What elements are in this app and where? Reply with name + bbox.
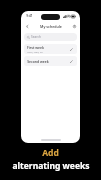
staticText: Add [42, 147, 59, 159]
staticText: 9:41 [26, 14, 33, 18]
staticText: alternating weeks [12, 160, 90, 172]
staticText: Search [31, 35, 41, 39]
staticText: My schedule [40, 24, 62, 29]
button[interactable]: Back [24, 23, 30, 29]
button[interactable]: First week [24, 44, 77, 54]
button[interactable]: Edit First week [69, 47, 74, 52]
button[interactable]: Search [24, 33, 77, 41]
button[interactable]: Edit Second week [69, 59, 74, 64]
button[interactable]: Second week [24, 56, 77, 66]
staticText: Second week [27, 59, 49, 64]
button[interactable]: More options [71, 23, 77, 29]
staticText: First week [27, 45, 44, 50]
staticText: Mon, Wed, Fri [27, 50, 43, 53]
